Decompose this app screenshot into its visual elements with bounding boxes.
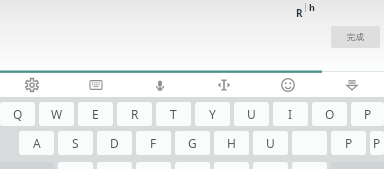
staticText: U <box>247 106 256 122</box>
button[interactable]: Switch keyboard <box>64 73 128 97</box>
button[interactable]: D <box>97 131 132 155</box>
staticText: P <box>345 135 353 151</box>
button[interactable]: S <box>58 131 93 155</box>
staticText: Y <box>209 106 216 122</box>
staticText: R <box>296 6 303 20</box>
button[interactable]: Hide keyboard <box>320 73 384 97</box>
button[interactable]: U <box>234 102 269 126</box>
button[interactable]: I <box>273 102 308 126</box>
button[interactable]: Y <box>195 102 230 126</box>
staticText: T <box>170 106 177 122</box>
button[interactable]: P <box>370 131 384 155</box>
staticText: A <box>33 135 41 151</box>
staticText: R <box>131 106 139 122</box>
button[interactable]: W <box>39 102 74 126</box>
staticText: S <box>72 135 79 151</box>
staticText: G <box>188 135 197 151</box>
button[interactable]: Emoji <box>256 73 320 97</box>
button[interactable]: A <box>19 131 54 155</box>
staticText: D <box>110 135 119 151</box>
staticText: U <box>266 135 275 151</box>
staticText: I <box>288 106 293 122</box>
staticText: E <box>92 106 99 122</box>
staticText: H <box>227 135 236 151</box>
staticText: h <box>309 1 315 13</box>
staticText: F <box>150 135 157 151</box>
button[interactable]: G <box>175 131 210 155</box>
staticText: P <box>364 106 372 122</box>
staticText: 完成 <box>347 32 364 43</box>
button[interactable]: Settings <box>0 73 64 97</box>
button[interactable]: 完成 <box>331 26 380 48</box>
button[interactable]: O <box>312 102 347 126</box>
button[interactable]: P <box>351 102 384 126</box>
button[interactable]: Move cursor <box>192 73 256 97</box>
button[interactable]: U <box>253 131 288 155</box>
button[interactable]: P <box>331 131 366 155</box>
staticText: Q <box>13 106 23 122</box>
staticText: P <box>373 135 381 151</box>
button[interactable]: Q <box>0 102 35 126</box>
button[interactable]: F <box>136 131 171 155</box>
staticText: W <box>51 106 63 122</box>
button[interactable]: E <box>78 102 113 126</box>
staticText: O <box>325 106 335 122</box>
button[interactable]: T <box>156 102 191 126</box>
button[interactable]: Voice input <box>128 73 192 97</box>
button[interactable]: R <box>117 102 152 126</box>
button[interactable]: H <box>214 131 249 155</box>
